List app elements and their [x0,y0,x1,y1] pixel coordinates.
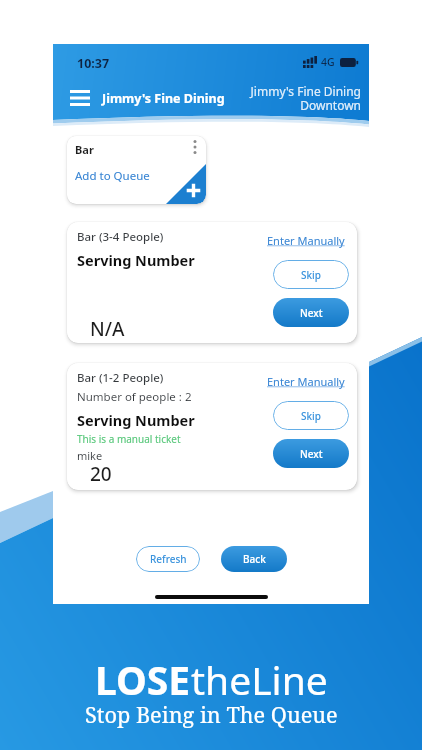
button[interactable]: Enter Manually [267,233,345,248]
staticText: 10:37 [77,55,110,69]
button[interactable]: More options [186,138,204,156]
staticText: 4G [321,55,335,69]
staticText: Jimmy's Fine Dining [102,90,225,107]
staticText: 20 [90,461,112,487]
staticText: Next [300,447,323,461]
staticText: LOSE [95,653,191,706]
staticText: Stop Being in The Queue [85,700,338,730]
staticText: Enter Manually [267,374,345,389]
staticText: This is a manual ticket [77,432,181,446]
staticText: Back [243,552,266,566]
staticText: Skip [301,409,321,423]
button[interactable]: Refresh [136,546,200,572]
staticText: N/A [90,316,125,342]
staticText: Bar [75,142,94,157]
staticText: Jimmy's Fine Dining Downtown [250,83,361,114]
button[interactable]: Next [273,439,349,468]
staticText: Refresh [150,552,187,566]
staticText: Enter Manually [267,233,345,248]
button[interactable]: Enter Manually [267,374,345,389]
button[interactable]: Open navigation menu [70,86,96,110]
staticText: Bar (3-4 People) [77,229,164,245]
staticText: Number of people : 2 [77,389,192,405]
button[interactable]: Back [221,546,287,572]
button[interactable]: Next [273,298,349,327]
button[interactable]: Skip [273,260,349,289]
staticText: Serving Number [77,410,195,430]
staticText: theLine [191,653,328,706]
button[interactable]: Skip [273,401,349,430]
button[interactable]: Bar [67,136,206,204]
staticText: mike [77,448,103,463]
staticText: Serving Number [77,250,195,270]
staticText: Bar (1-2 People) [77,370,164,386]
staticText: Add to Queue [75,168,150,184]
staticText: Next [300,306,323,320]
staticText: Skip [301,268,321,282]
